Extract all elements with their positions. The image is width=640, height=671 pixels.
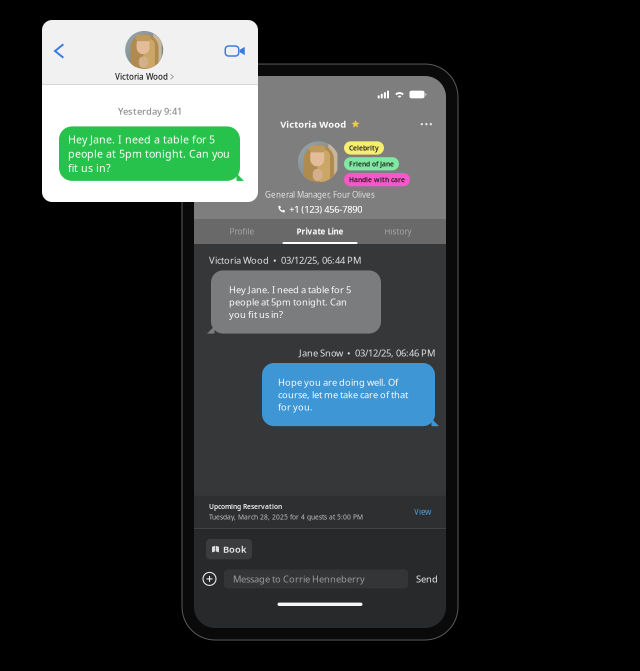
button[interactable]: History [359, 219, 437, 244]
button[interactable]: Back [48, 38, 70, 64]
staticText: General Manager, Four Olives [265, 189, 375, 200]
staticText: Send [416, 573, 438, 585]
staticText: Handle with care [349, 175, 405, 184]
staticText: Victoria Wood [280, 118, 346, 130]
button[interactable]: Message to Corrie Henneberry [224, 569, 408, 588]
button[interactable]: Profile [203, 219, 281, 244]
button[interactable]: Book [206, 539, 252, 559]
staticText: Jane Snow • 03/12/25, 06:46 PM [299, 347, 435, 359]
staticText: View [414, 506, 431, 517]
button[interactable]: More options [415, 117, 438, 131]
staticText: +1 (123) 456-7890 [289, 203, 362, 215]
button[interactable]: Private Line [281, 219, 359, 244]
staticText: Yesterday 9:41 [118, 105, 182, 117]
staticText: Hey Jane. I need a table for 5 people at… [68, 132, 230, 175]
button[interactable]: Send [416, 573, 438, 585]
staticText: Celebrity [349, 143, 379, 152]
staticText: Victoria Wood • 03/12/25, 06:44 PM [209, 254, 361, 266]
button[interactable]: Add attachment [203, 572, 216, 585]
staticText: Hope you are doing well. Of course, let … [278, 376, 408, 413]
staticText: Book [223, 543, 246, 555]
staticText: History [384, 226, 411, 237]
staticText: Profile [229, 226, 254, 237]
staticText: Tuesday, March 28, 2025 for 4 guests at … [209, 512, 363, 521]
staticText: Message to Corrie Henneberry [233, 573, 365, 585]
button[interactable]: FaceTime [218, 40, 252, 62]
staticText: Private Line [296, 226, 343, 237]
staticText: Hey Jane. I need a table for 5 people at… [229, 283, 351, 321]
staticText: Friend of Jane [349, 159, 394, 168]
staticText: Upcoming Reservation [209, 502, 282, 511]
button[interactable]: View [409, 501, 436, 522]
staticText: Victoria Wood [115, 71, 168, 82]
